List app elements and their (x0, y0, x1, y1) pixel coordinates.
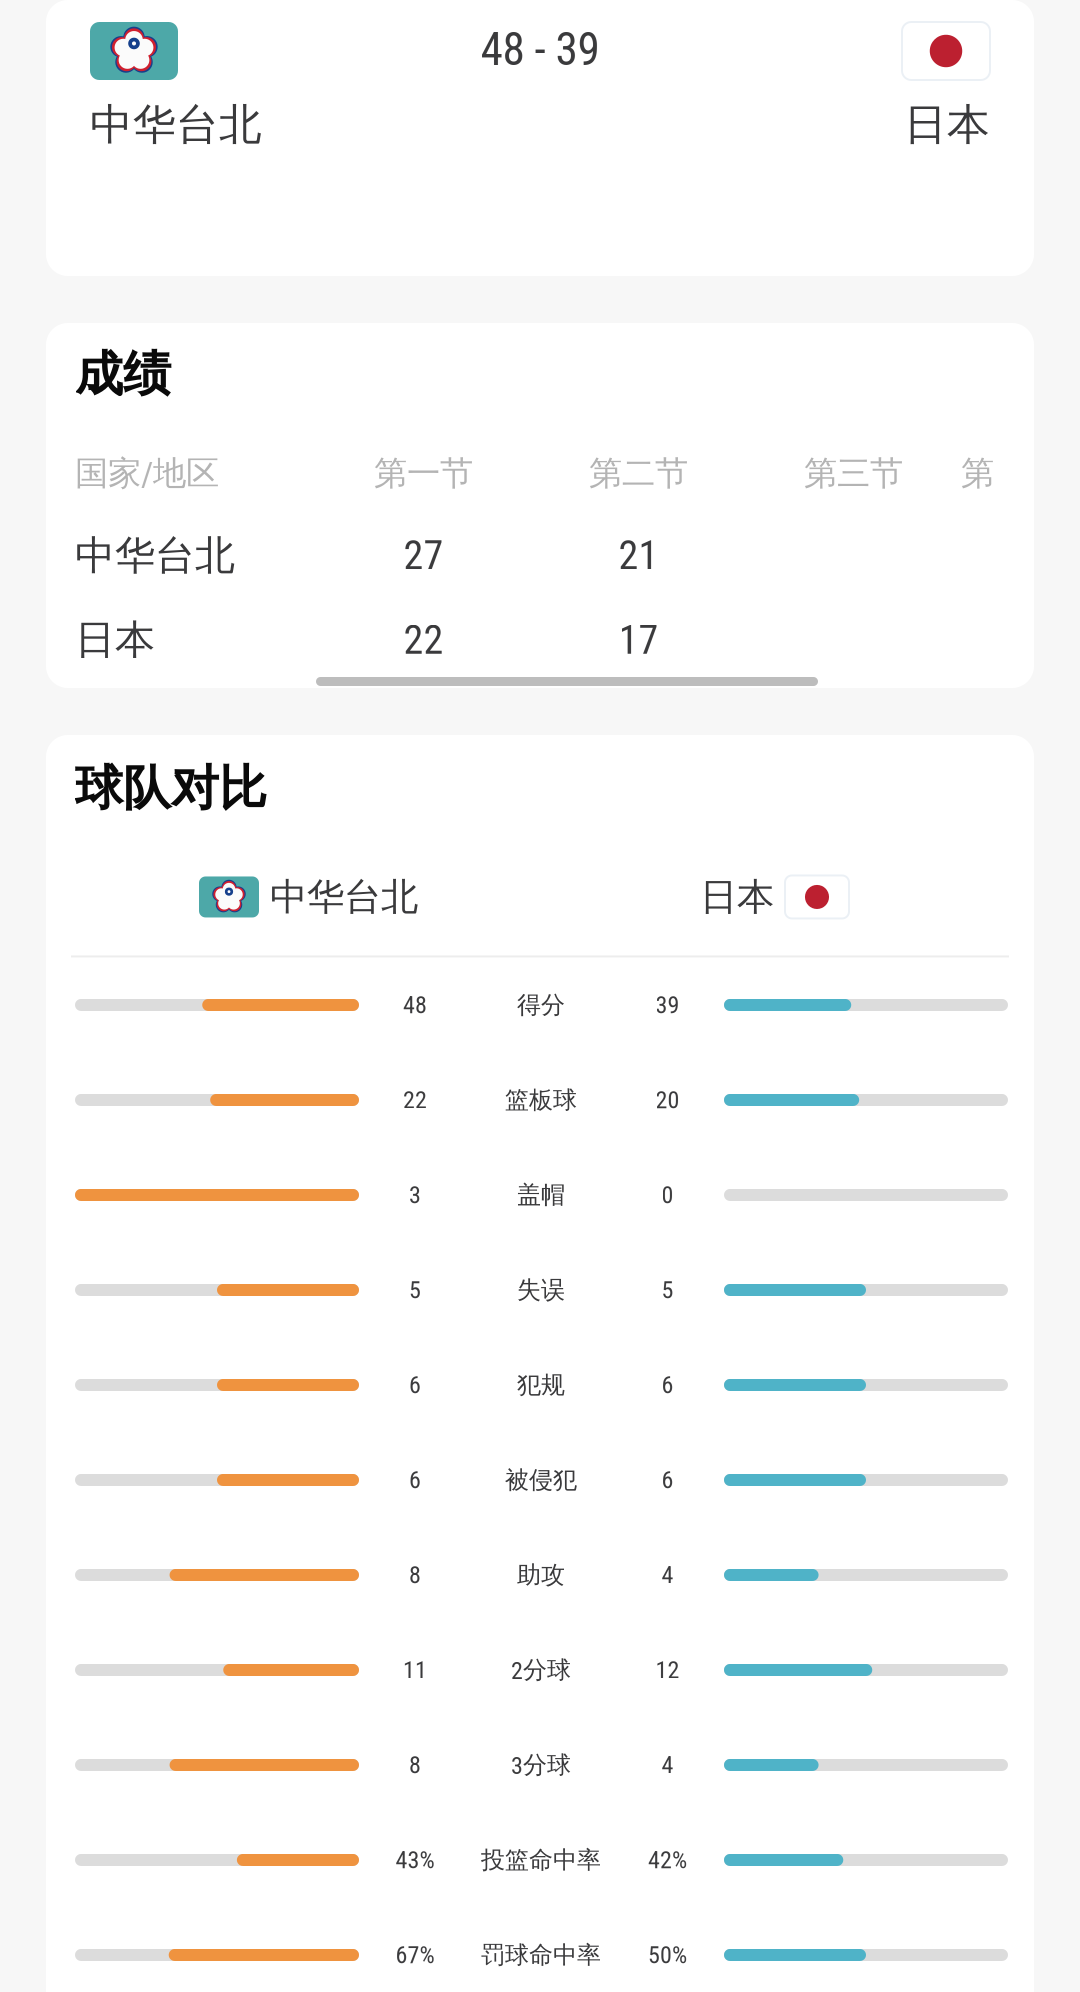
staticText: 中华台北 (90, 98, 262, 152)
staticText: 6 (661, 1466, 673, 1494)
staticText: 日本 (75, 615, 155, 665)
button[interactable]: 中华台北 (46, 0, 1034, 276)
staticText: 6 (661, 1371, 673, 1399)
staticText: 第二节 (589, 452, 688, 494)
staticText: 犯规 (517, 1370, 565, 1400)
staticText: 第 (961, 452, 994, 494)
staticText: 21 (618, 532, 658, 579)
staticText: 中华台北 (270, 873, 418, 920)
staticText: 球队对比 (75, 758, 267, 818)
staticText: 中华台北 (75, 530, 235, 581)
staticText: 8 (409, 1561, 421, 1589)
staticText: 被侵犯 (505, 1465, 577, 1495)
staticText: 日本 (700, 873, 774, 920)
staticText: 失误 (517, 1275, 565, 1305)
staticText: 48 - 39 (480, 23, 599, 76)
staticText: 3分球 (511, 1750, 571, 1780)
staticText: 4 (661, 1561, 673, 1589)
staticText: 5 (409, 1276, 421, 1304)
staticText: 12 (655, 1656, 679, 1684)
staticText: 6 (409, 1371, 421, 1399)
staticText: 22 (403, 1086, 427, 1114)
staticText: 67% (395, 1941, 434, 1969)
staticText: 投篮命中率 (481, 1845, 601, 1875)
staticText: 39 (655, 991, 679, 1019)
staticText: 43% (395, 1846, 434, 1874)
staticText: 盖帽 (517, 1180, 565, 1210)
staticText: 17 (618, 617, 658, 663)
staticText: 第一节 (374, 452, 473, 494)
staticText: 0 (661, 1181, 673, 1209)
staticText: 8 (409, 1751, 421, 1779)
staticText: 日本 (904, 98, 990, 152)
staticText: 20 (655, 1086, 679, 1114)
staticText: 3 (409, 1181, 421, 1209)
staticText: 6 (409, 1466, 421, 1494)
staticText: 11 (403, 1656, 427, 1684)
staticText: 50% (648, 1941, 687, 1969)
staticText: 27 (403, 532, 443, 579)
staticText: 篮板球 (505, 1085, 577, 1115)
staticText: 国家/地区 (75, 452, 219, 494)
staticText: 助攻 (517, 1560, 565, 1590)
staticText: 罚球命中率 (481, 1940, 601, 1970)
staticText: 48 (403, 991, 427, 1019)
staticText: 2分球 (511, 1655, 571, 1685)
staticText: 第三节 (804, 452, 903, 494)
staticText: 42% (648, 1846, 687, 1874)
staticText: 成绩 (75, 344, 171, 404)
staticText: 得分 (517, 990, 565, 1020)
staticText: 5 (661, 1276, 673, 1304)
staticText: 22 (403, 617, 443, 663)
staticText: 4 (661, 1751, 673, 1779)
